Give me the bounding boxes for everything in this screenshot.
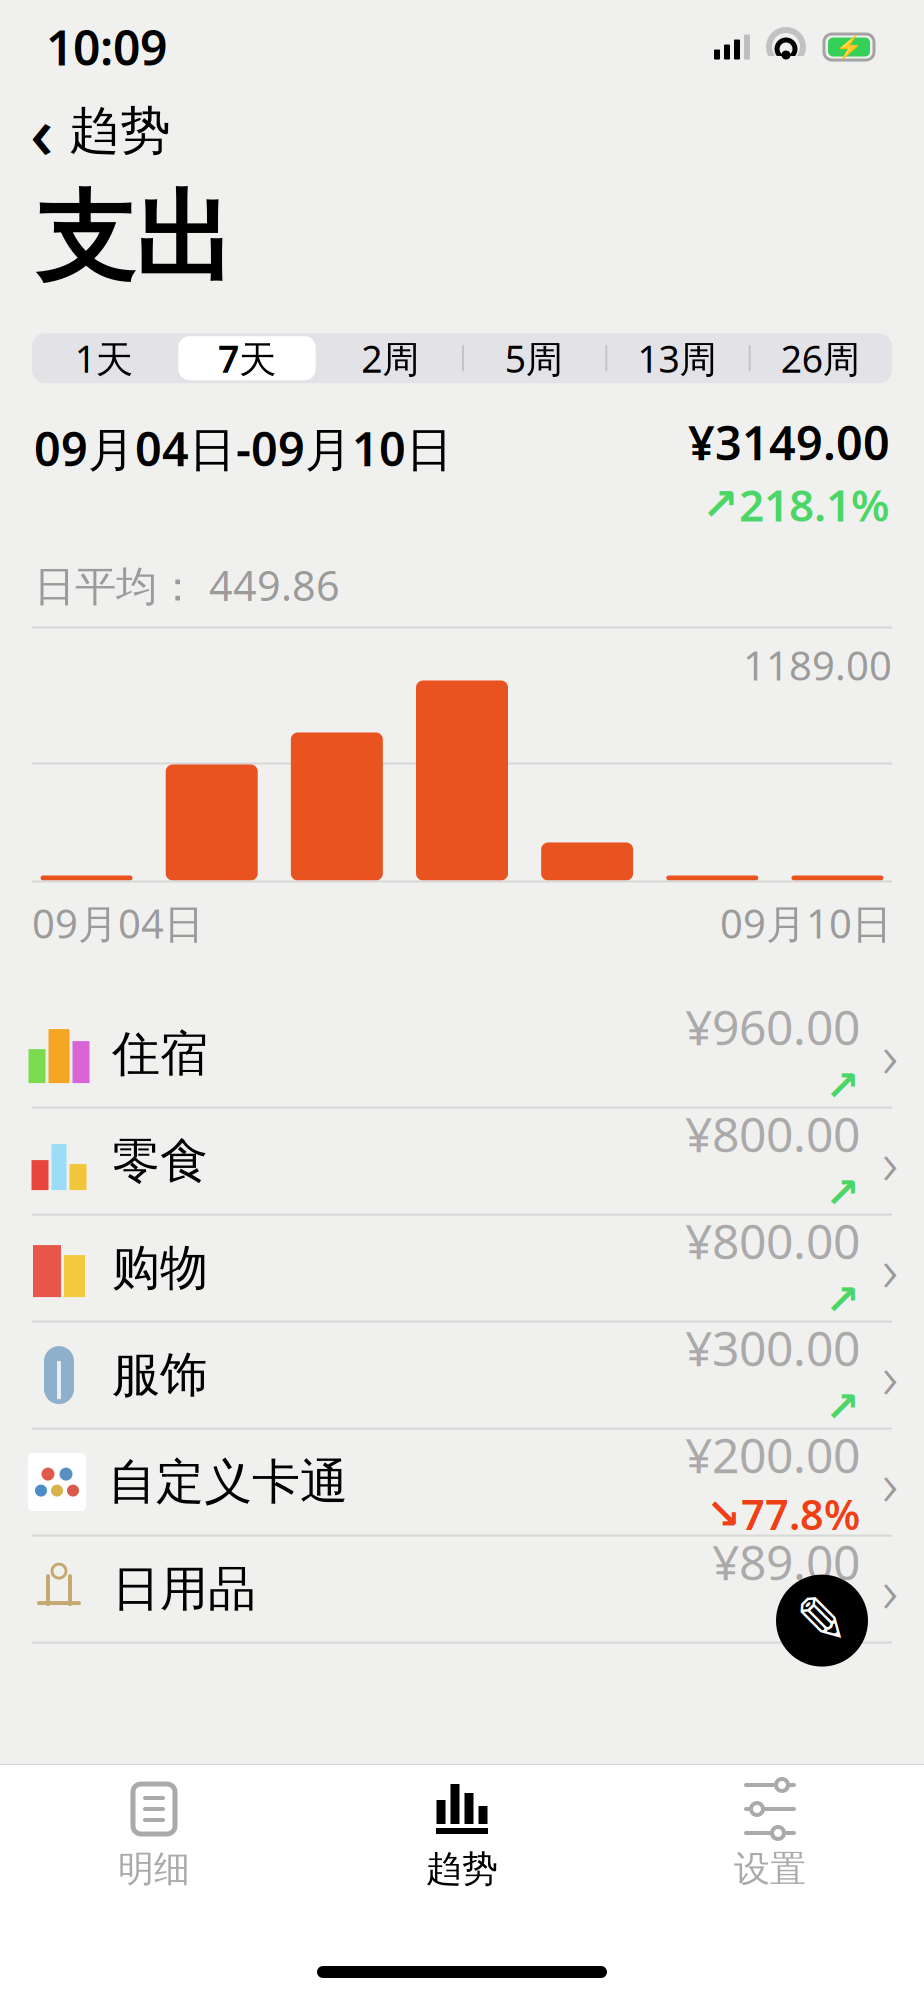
staticText: 日用品 bbox=[112, 1560, 256, 1619]
button[interactable]: 5周 bbox=[462, 333, 605, 383]
staticText: › bbox=[882, 1548, 898, 1630]
staticText: ↗ bbox=[702, 479, 739, 529]
staticText: ↗ bbox=[825, 1276, 860, 1323]
staticText: 13周 bbox=[637, 333, 716, 383]
staticText: › bbox=[882, 1120, 898, 1202]
staticText: 自定义卡通 bbox=[108, 1453, 348, 1512]
staticText: 服饰 bbox=[112, 1346, 208, 1405]
button[interactable]: 设置 bbox=[616, 1783, 924, 1891]
staticText: 明细 bbox=[118, 1847, 190, 1891]
staticText: › bbox=[882, 1441, 898, 1523]
staticText: ↗ bbox=[825, 1383, 860, 1430]
staticText: › bbox=[882, 1227, 898, 1309]
staticText: 218.1% bbox=[739, 475, 890, 534]
staticText: 趋势 bbox=[426, 1847, 498, 1891]
staticText: 77.8% bbox=[741, 1486, 860, 1541]
staticText: 购物 bbox=[112, 1239, 208, 1298]
staticText: ⚡ bbox=[835, 34, 863, 60]
staticText: 日平均： 449.86 bbox=[34, 558, 340, 612]
button[interactable]: 7天 bbox=[175, 333, 319, 383]
staticText: ↗ bbox=[825, 1062, 860, 1109]
staticText: 1天 bbox=[75, 333, 133, 383]
staticText: ¥960.00 bbox=[685, 995, 860, 1058]
button[interactable]: 明细 bbox=[0, 1783, 308, 1891]
button[interactable]: 1天 bbox=[32, 333, 175, 383]
button[interactable]: New entry bbox=[776, 1575, 868, 1667]
button[interactable]: 零食 bbox=[0, 1109, 924, 1216]
staticText: 趋势 bbox=[69, 100, 171, 162]
staticText: ¥200.00 bbox=[685, 1423, 860, 1486]
staticText: 设置 bbox=[734, 1847, 806, 1891]
staticText: 7天 bbox=[218, 333, 276, 383]
staticText: ✎ bbox=[795, 1584, 849, 1657]
staticText: ↘ bbox=[706, 1490, 741, 1537]
staticText: 10:09 bbox=[46, 15, 167, 79]
staticText: 5周 bbox=[505, 333, 563, 383]
staticText: › bbox=[882, 1013, 898, 1095]
button[interactable]: 2周 bbox=[319, 333, 462, 383]
staticText: ¥300.00 bbox=[685, 1316, 860, 1379]
staticText: ↗ bbox=[825, 1169, 860, 1216]
staticText: ¥800.00 bbox=[685, 1102, 860, 1165]
staticText: 1189.00 bbox=[743, 638, 892, 692]
staticText: ¥3149.00 bbox=[688, 411, 890, 473]
staticText: 09月04日-09月10日 bbox=[34, 417, 453, 479]
button[interactable]: 趋势 bbox=[308, 1783, 616, 1891]
staticText: 09月04日 bbox=[32, 896, 204, 950]
button[interactable]: 日用品 bbox=[0, 1537, 924, 1644]
staticText: ¥89.00 bbox=[712, 1530, 860, 1593]
button[interactable]: 购物 bbox=[0, 1216, 924, 1323]
staticText: 住宿 bbox=[112, 1025, 208, 1084]
staticText: ‹ bbox=[30, 83, 53, 179]
button[interactable]: 13周 bbox=[605, 333, 749, 383]
staticText: ↗ bbox=[825, 1597, 860, 1644]
button[interactable]: 26周 bbox=[749, 333, 892, 383]
staticText: 零食 bbox=[112, 1132, 208, 1191]
staticText: › bbox=[882, 1334, 898, 1416]
staticText: 26周 bbox=[781, 333, 860, 383]
button[interactable]: 自定义卡通 bbox=[0, 1430, 924, 1537]
staticText: ¥800.00 bbox=[685, 1209, 860, 1272]
staticText: 支出 bbox=[36, 178, 234, 299]
staticText: 09月10日 bbox=[720, 896, 892, 950]
staticText: 2周 bbox=[361, 333, 419, 383]
button[interactable]: 服饰 bbox=[0, 1323, 924, 1430]
button[interactable]: ‹ bbox=[0, 94, 924, 168]
button[interactable]: 住宿 bbox=[0, 1002, 924, 1109]
